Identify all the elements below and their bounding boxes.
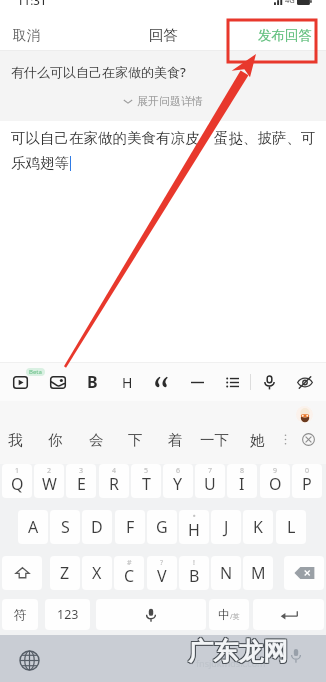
staticText: P bbox=[302, 473, 312, 495]
staticText: M bbox=[251, 562, 266, 584]
staticText: 广东龙网 bbox=[188, 635, 288, 666]
staticText: 广东龙网 bbox=[189, 637, 289, 668]
staticText: 一下 bbox=[200, 431, 229, 449]
staticText: 着 bbox=[168, 431, 183, 449]
staticText: N bbox=[220, 562, 233, 584]
staticText: W bbox=[42, 473, 57, 495]
staticText: 你 bbox=[48, 431, 63, 449]
staticText: Z bbox=[60, 562, 70, 584]
button[interactable]: J bbox=[211, 510, 241, 544]
staticText: E bbox=[77, 473, 86, 495]
button[interactable]: 她 bbox=[245, 426, 269, 453]
staticText: R bbox=[109, 473, 119, 495]
button[interactable]: 1 bbox=[2, 464, 32, 498]
staticText: 11:31 bbox=[17, 0, 47, 9]
button[interactable]: Shift bbox=[2, 556, 42, 590]
button[interactable]: Enter bbox=[253, 599, 324, 630]
staticText: 2 bbox=[47, 466, 52, 476]
staticText: 广东龙网 bbox=[187, 637, 287, 668]
staticText: H bbox=[122, 373, 133, 392]
button[interactable]: 你 bbox=[43, 426, 67, 453]
staticText: 1 bbox=[15, 466, 20, 476]
button[interactable]: Voice input bbox=[96, 599, 206, 630]
button[interactable]: K bbox=[243, 510, 273, 544]
button[interactable]: Bold bbox=[78, 368, 106, 396]
button[interactable]: Close candidates bbox=[297, 427, 319, 451]
button[interactable]: Backspace bbox=[284, 556, 324, 590]
button[interactable]: A bbox=[18, 510, 48, 544]
button[interactable]: 我 bbox=[3, 426, 27, 453]
button[interactable]: L bbox=[276, 510, 306, 544]
staticText: L bbox=[287, 516, 296, 538]
button[interactable]: F bbox=[115, 510, 145, 544]
button[interactable]: ? bbox=[147, 556, 177, 590]
staticText: 7 bbox=[208, 466, 213, 476]
button[interactable]: 取消 bbox=[0, 20, 53, 50]
button[interactable]: 2 bbox=[34, 464, 64, 498]
staticText: # bbox=[127, 558, 132, 568]
staticText: ! bbox=[193, 558, 195, 568]
button[interactable]: Switch input language bbox=[18, 649, 41, 672]
button[interactable]: Heading bbox=[113, 368, 141, 396]
button[interactable]: ∙ bbox=[179, 510, 209, 544]
button[interactable]: 一下 bbox=[195, 426, 233, 453]
staticText: 123 bbox=[57, 606, 79, 623]
button[interactable]: 发布回答 bbox=[244, 20, 326, 50]
button[interactable]: 7 bbox=[195, 464, 225, 498]
staticText: K bbox=[253, 516, 263, 538]
button[interactable]: Sticker bbox=[296, 406, 313, 423]
button[interactable]: 8 bbox=[227, 464, 257, 498]
staticText: Q bbox=[11, 473, 24, 495]
button[interactable]: 9 bbox=[260, 464, 290, 498]
button[interactable]: G bbox=[147, 510, 177, 544]
button[interactable]: 6 bbox=[163, 464, 193, 498]
staticText: /英 bbox=[230, 612, 240, 622]
button[interactable]: 下 bbox=[123, 426, 147, 453]
button[interactable]: N bbox=[211, 556, 241, 590]
button[interactable]: 5 bbox=[131, 464, 161, 498]
button[interactable]: Insert video bbox=[6, 368, 34, 396]
staticText: J bbox=[224, 516, 229, 538]
button[interactable]: 0 bbox=[292, 464, 322, 498]
button[interactable]: Hide preview bbox=[291, 368, 319, 396]
staticText: 广东龙网 bbox=[187, 636, 287, 667]
button[interactable]: 着 bbox=[163, 426, 187, 453]
button[interactable]: X bbox=[82, 556, 112, 590]
button[interactable]: M bbox=[243, 556, 273, 590]
staticText: 中 bbox=[218, 607, 230, 622]
staticText: 下 bbox=[128, 431, 143, 449]
button[interactable]: Chinese English toggle bbox=[209, 599, 249, 630]
staticText: B bbox=[87, 371, 98, 393]
button[interactable]: 会 bbox=[84, 426, 108, 453]
button[interactable]: More candidates bbox=[278, 427, 292, 451]
button[interactable]: Horizontal rule bbox=[183, 368, 211, 396]
button[interactable]: Numbers bbox=[45, 599, 90, 630]
button[interactable]: D bbox=[82, 510, 112, 544]
staticText: 展开问题详情 bbox=[137, 94, 203, 108]
button[interactable]: S bbox=[50, 510, 80, 544]
button[interactable]: Voice input bbox=[255, 368, 283, 396]
button[interactable]: Bulleted list bbox=[218, 368, 246, 396]
button[interactable]: Z bbox=[50, 556, 80, 590]
staticText: F bbox=[126, 516, 135, 538]
staticText: 回答 bbox=[149, 26, 178, 44]
staticText: 广东龙网 bbox=[188, 637, 288, 668]
button[interactable]: 4 bbox=[99, 464, 129, 498]
button[interactable]: Quote bbox=[147, 368, 175, 396]
button[interactable]: Symbols bbox=[2, 599, 38, 630]
staticText: I bbox=[239, 473, 245, 495]
staticText: 会 bbox=[89, 431, 104, 449]
staticText: Beta bbox=[29, 368, 42, 376]
staticText: T bbox=[142, 473, 151, 495]
staticText: 4 bbox=[112, 466, 117, 476]
button[interactable]: 展开问题详情 bbox=[0, 93, 326, 109]
button[interactable]: Insert image bbox=[44, 368, 72, 396]
button[interactable]: ! bbox=[179, 556, 209, 590]
staticText: ? bbox=[160, 558, 164, 568]
staticText: 可以自己在家做的美食有凉皮、蛋挞、披萨、可乐鸡翅等 bbox=[11, 129, 316, 172]
staticText: D bbox=[91, 516, 103, 538]
staticText: 取消 bbox=[13, 27, 40, 44]
button[interactable]: # bbox=[114, 556, 144, 590]
button[interactable]: 3 bbox=[66, 464, 96, 498]
staticText: 广东龙网 bbox=[188, 636, 288, 667]
